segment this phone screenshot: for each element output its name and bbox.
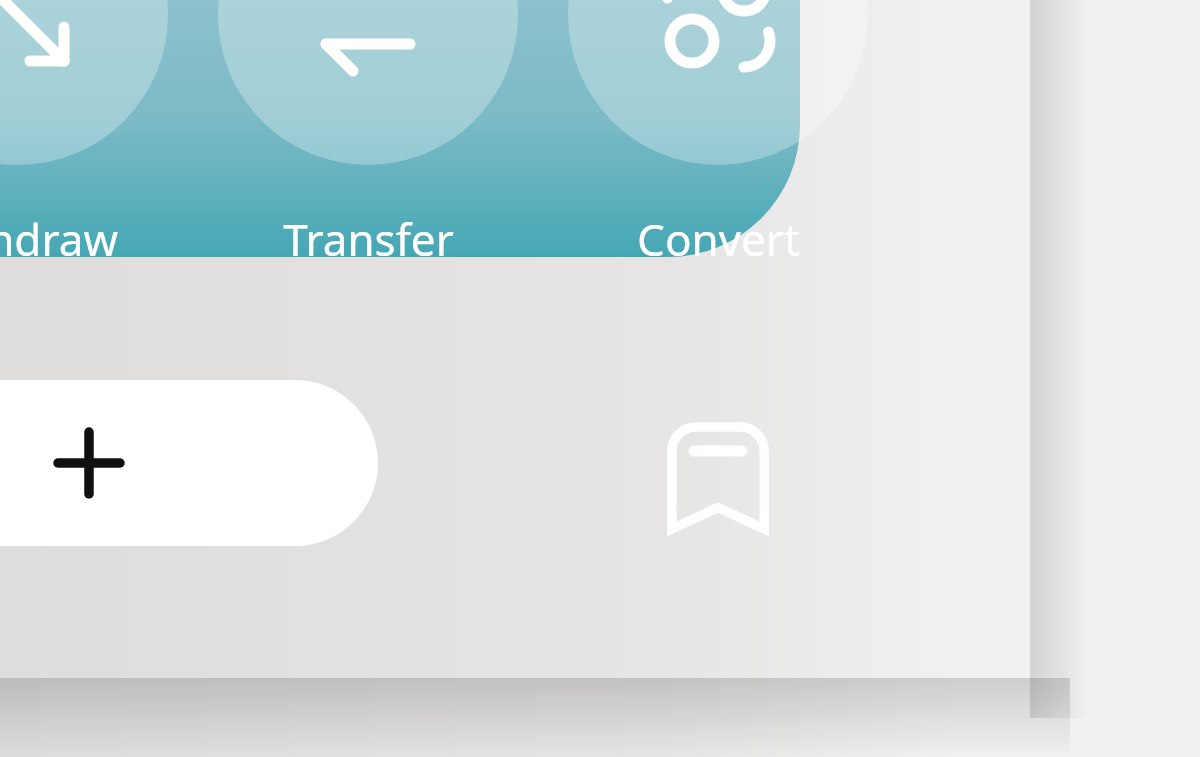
button[interactable]: Transfer xyxy=(218,0,518,165)
button[interactable]: Convert xyxy=(548,208,888,270)
button[interactable]: Withdraw xyxy=(0,208,188,270)
button[interactable]: Transfer xyxy=(198,208,538,270)
button[interactable]: Add xyxy=(0,380,378,546)
button[interactable]: Convert xyxy=(568,0,868,165)
button[interactable]: Withdraw xyxy=(0,0,168,165)
staticText: Transfer xyxy=(283,209,454,269)
staticText: Withdraw xyxy=(0,209,118,269)
button[interactable]: Saved xyxy=(638,398,798,558)
staticText: Convert xyxy=(637,209,800,269)
